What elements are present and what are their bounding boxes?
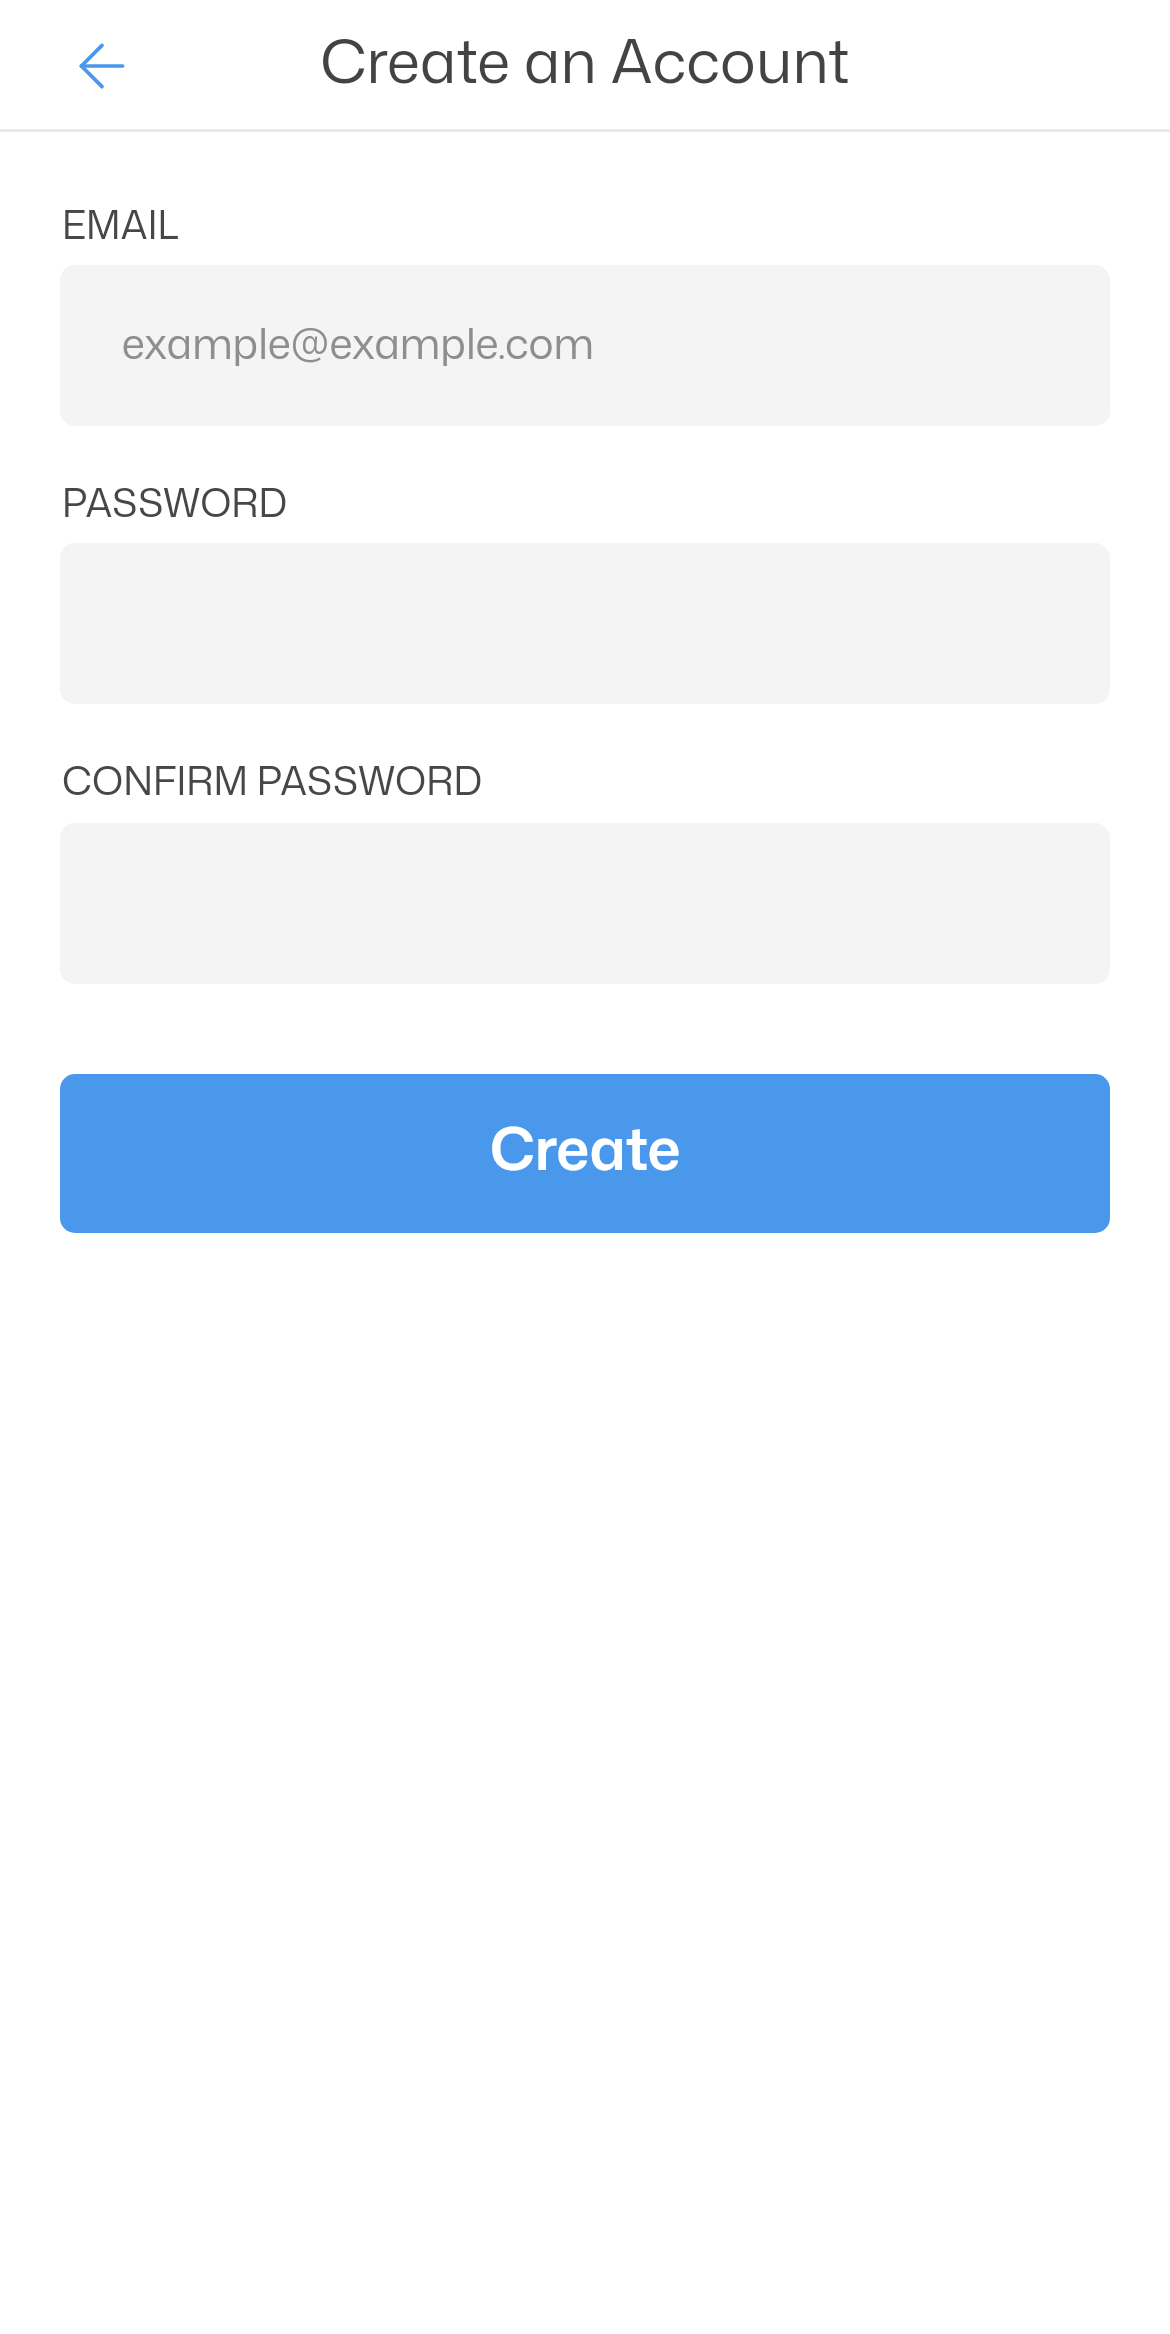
button[interactable]: Create xyxy=(60,1074,1110,1233)
staticText: EMAIL xyxy=(62,197,179,251)
staticText: Create an Account xyxy=(0,18,1170,103)
staticText: example@example.com xyxy=(122,313,594,372)
button[interactable]: example@example.com xyxy=(60,265,1110,426)
staticText: Create xyxy=(490,1107,681,1189)
button[interactable]: Back xyxy=(56,20,148,112)
staticText: CONFIRM PASSWORD xyxy=(62,753,483,807)
staticText: PASSWORD xyxy=(62,475,288,529)
